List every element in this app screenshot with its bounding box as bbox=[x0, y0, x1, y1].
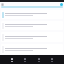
button[interactable]: Profile bbox=[60, 3, 63, 6]
button[interactable]: Settings bbox=[50, 55, 54, 64]
button[interactable]: Library bbox=[37, 55, 41, 64]
button[interactable] bbox=[1, 21, 63, 30]
button[interactable] bbox=[1, 44, 63, 54]
button[interactable] bbox=[1, 32, 63, 42]
button[interactable]: Menu bbox=[1, 3, 4, 6]
button[interactable]: Home bbox=[10, 55, 14, 64]
button[interactable]: Search bbox=[23, 55, 27, 64]
button[interactable] bbox=[1, 10, 63, 19]
